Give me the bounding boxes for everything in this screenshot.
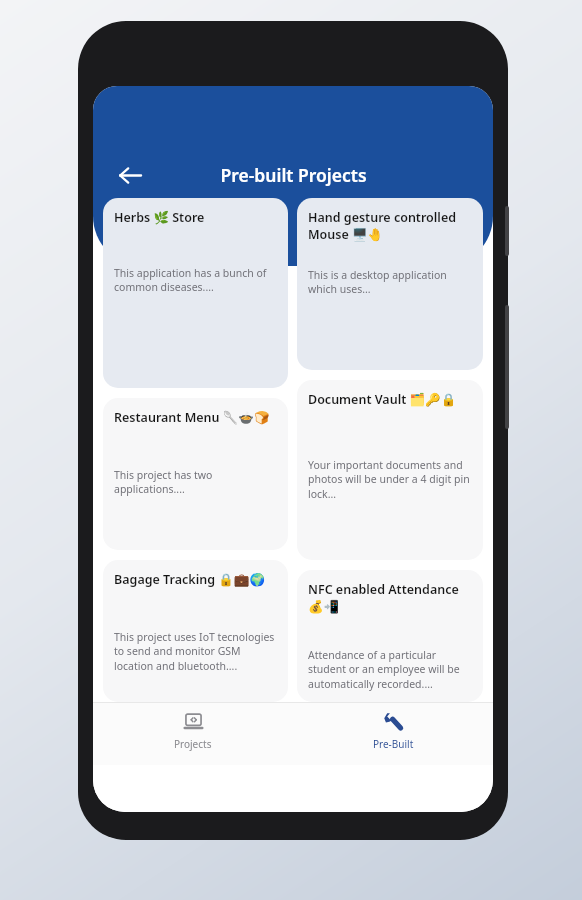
button[interactable]: Restaurant Menu 🥄🍲🍞: [103, 398, 288, 550]
staticText: This is a desktop application which uses…: [308, 268, 472, 296]
staticText: Herbs 🌿 Store: [114, 209, 205, 226]
staticText: Pre-Built: [373, 737, 414, 751]
staticText: Pre-built Projects: [220, 163, 367, 187]
staticText: This application has a bunch of common d…: [114, 266, 277, 294]
staticText: Attendance of a particular student or an…: [308, 648, 472, 691]
staticText: Document Vault 🗂️🔑🔒: [308, 391, 457, 408]
button[interactable]: Document Vault 🗂️🔑🔒: [297, 380, 483, 560]
staticText: Restaurant Menu 🥄🍲🍞: [114, 409, 270, 426]
staticText: This project uses IoT tecnologies to sen…: [114, 630, 277, 673]
button[interactable]: Back: [107, 152, 153, 198]
staticText: Bagage Tracking 🔒💼🌍: [114, 571, 265, 588]
button[interactable]: Herbs 🌿 Store: [103, 198, 288, 388]
button[interactable]: Pre-Built: [293, 703, 493, 765]
staticText: NFC enabled Attendance 💰📲: [308, 581, 472, 614]
staticText: This project has two applications....: [114, 468, 277, 496]
staticText: Hand gesture controlled Mouse 🖥️🤚: [308, 209, 472, 242]
button[interactable]: Bagage Tracking 🔒💼🌍: [103, 560, 288, 702]
button[interactable]: Hand gesture controlled Mouse 🖥️🤚: [297, 198, 483, 370]
button[interactable]: NFC enabled Attendance 💰📲: [297, 570, 483, 702]
staticText: Your important documents and photos will…: [308, 458, 472, 501]
staticText: Projects: [174, 737, 212, 751]
button[interactable]: Projects: [93, 703, 293, 765]
